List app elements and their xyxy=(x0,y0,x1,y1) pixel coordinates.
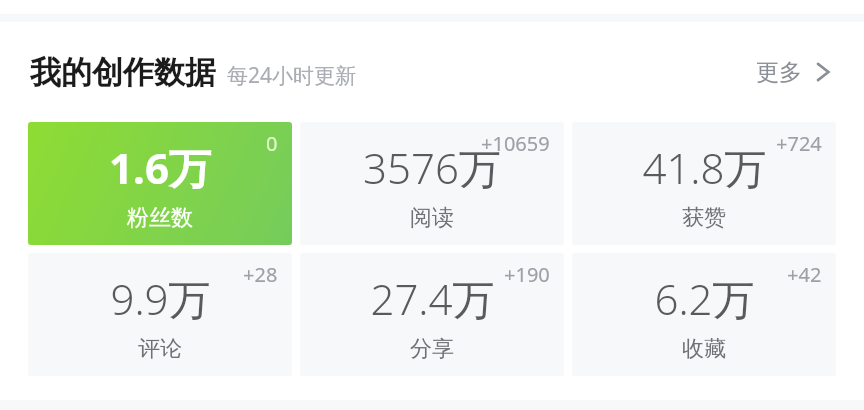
button[interactable]: +190 xyxy=(300,253,564,376)
staticText: 分享 xyxy=(410,335,454,363)
staticText: 41.8万 xyxy=(642,139,767,196)
button[interactable]: +724 xyxy=(572,122,836,245)
button[interactable]: 0 xyxy=(28,122,292,245)
staticText: 3576万 xyxy=(363,139,501,196)
staticText: +190 xyxy=(504,261,550,288)
staticText: 6.2万 xyxy=(654,270,755,327)
staticText: +10659 xyxy=(481,130,550,157)
staticText: 1.6万 xyxy=(109,139,211,196)
staticText: 获赞 xyxy=(682,204,726,232)
staticText: 27.4万 xyxy=(370,270,495,327)
staticText: 评论 xyxy=(138,335,182,363)
staticText: 每24小时更新 xyxy=(227,61,357,90)
staticText: 阅读 xyxy=(410,204,454,232)
staticText: 0 xyxy=(266,130,278,157)
staticText: 收藏 xyxy=(682,335,726,363)
staticText: +28 xyxy=(243,261,278,288)
other: 更多 xyxy=(814,57,832,87)
staticText: 粉丝数 xyxy=(127,204,193,232)
staticText: 我的创作数据 xyxy=(30,53,216,92)
button[interactable]: +28 xyxy=(28,253,292,376)
staticText: +724 xyxy=(776,130,822,157)
button[interactable]: 更多 xyxy=(752,51,836,93)
staticText: 9.9万 xyxy=(110,270,211,327)
button[interactable]: +10659 xyxy=(300,122,564,245)
staticText: 更多 xyxy=(756,58,802,87)
staticText: +42 xyxy=(787,261,822,288)
button[interactable]: +42 xyxy=(572,253,836,376)
